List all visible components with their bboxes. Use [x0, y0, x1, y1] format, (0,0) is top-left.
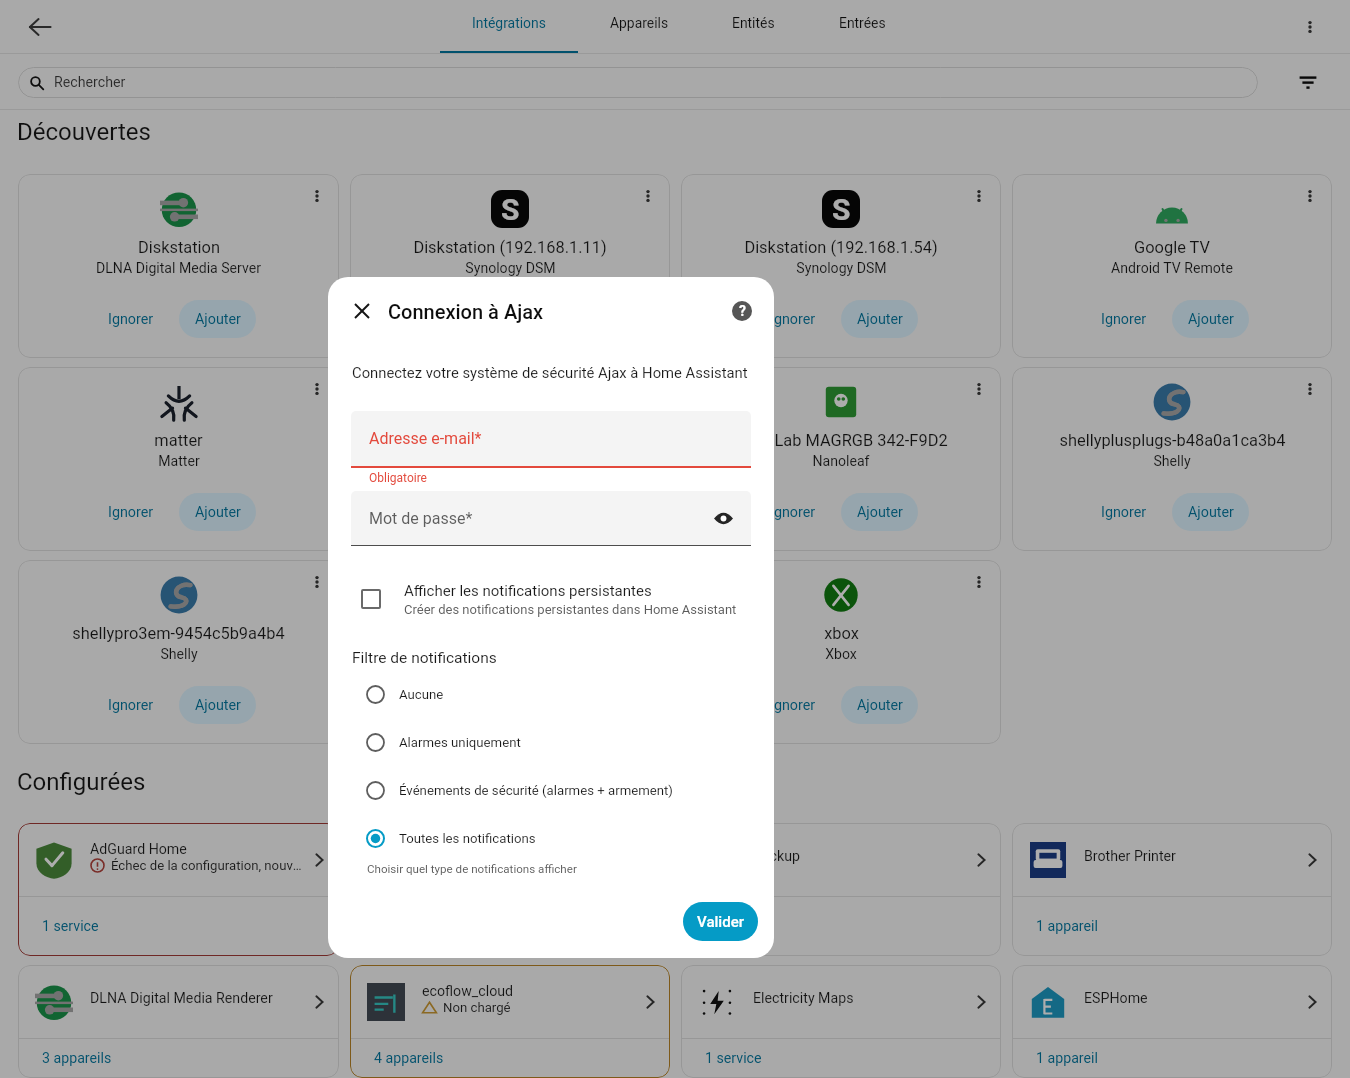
- staticText: Adresse e-mail*: [369, 429, 482, 448]
- button[interactable]: Ignorer: [758, 686, 828, 724]
- button[interactable]: Options: [305, 377, 329, 401]
- button[interactable]: Afficher les notifications persistantes: [352, 575, 752, 623]
- button[interactable]: Options: [305, 184, 329, 208]
- button[interactable]: Options: [636, 377, 660, 401]
- staticText: Mot de passe*: [369, 509, 473, 528]
- staticText: 1 service: [705, 918, 762, 935]
- button[interactable]: Close: [346, 295, 378, 327]
- button[interactable]: Filter: [1286, 60, 1330, 104]
- button[interactable]: ecoflow_cloud: [350, 965, 670, 1078]
- button[interactable]: S: [350, 174, 670, 358]
- button[interactable]: DLNA Digital Media Renderer: [18, 965, 339, 1078]
- staticText: Synology DSM: [465, 260, 556, 277]
- button[interactable]: Backup: [350, 823, 670, 956]
- button[interactable]: Ajouter: [1172, 300, 1249, 338]
- button[interactable]: Ignorer: [427, 493, 497, 531]
- staticText: shellyplusplugs-b48a0a1ca3b4: [1059, 431, 1286, 450]
- button[interactable]: More options: [1284, 1, 1336, 53]
- button[interactable]: AdGuard Home: [18, 823, 339, 956]
- staticText: Aucune: [399, 687, 444, 702]
- staticText: Obligatoire: [369, 471, 427, 485]
- button[interactable]: NanoLab MAGRGB 342-F9D2: [350, 367, 670, 551]
- button[interactable]: Options: [1298, 377, 1322, 401]
- button[interactable]: Adresse e-mail*: [351, 411, 751, 466]
- button[interactable]: Entités: [700, 0, 806, 54]
- staticText: Ignorer: [770, 311, 816, 328]
- staticText: Shelly: [1153, 453, 1191, 470]
- button[interactable]: Ignorer: [758, 300, 828, 338]
- button[interactable]: Ajouter: [510, 300, 587, 338]
- button[interactable]: Brother Printer: [1012, 823, 1332, 956]
- button[interactable]: Appareils: [578, 0, 700, 54]
- button[interactable]: Rechercher: [18, 67, 1258, 98]
- button[interactable]: Mot de passe*: [351, 491, 751, 545]
- staticText: AdGuard Home: [90, 841, 187, 858]
- staticText: Toutes les notifications: [399, 831, 536, 846]
- staticText: 1 appareil: [1036, 918, 1098, 935]
- button[interactable]: Ignorer: [96, 686, 166, 724]
- staticText: Afficher les notifications persistantes: [404, 582, 652, 600]
- button[interactable]: Ignorer: [96, 493, 166, 531]
- button[interactable]: NanoLab MAGRGB 342-F9D2: [681, 367, 1001, 551]
- button[interactable]: Ajouter: [841, 493, 918, 531]
- button[interactable]: Intégrations: [440, 0, 578, 54]
- button[interactable]: Toutes les notifications: [352, 814, 752, 862]
- staticText: Intégrations: [472, 15, 546, 31]
- button[interactable]: Back: [14, 1, 66, 53]
- button[interactable]: Ajouter: [179, 686, 256, 724]
- button[interactable]: Options: [1298, 184, 1322, 208]
- staticText: shellypro3em-9454c5b9a4b4: [72, 624, 285, 643]
- button[interactable]: Help: [727, 296, 757, 326]
- button[interactable]: Ajouter: [841, 300, 918, 338]
- staticText: S: [501, 192, 520, 227]
- button[interactable]: Ignorer: [1089, 493, 1159, 531]
- button[interactable]: matter: [18, 367, 339, 551]
- button[interactable]: Diskstation: [18, 174, 339, 358]
- button[interactable]: S: [681, 174, 1001, 358]
- staticText: 3 appareils: [42, 1050, 112, 1067]
- staticText: Échec de la configuration, nouvel e…: [111, 858, 302, 873]
- button[interactable]: Entrées: [806, 0, 918, 54]
- button[interactable]: xbox: [681, 560, 1001, 744]
- staticText: Entités: [732, 15, 775, 31]
- button[interactable]: ESPHome: [1012, 965, 1332, 1078]
- button[interactable]: Options: [636, 570, 660, 594]
- staticText: Xbox: [825, 646, 857, 663]
- button[interactable]: xbox: [350, 560, 670, 744]
- staticText: Ignorer: [108, 504, 154, 521]
- button[interactable]: shellyplusplugs-b48a0a1ca3b4: [1012, 367, 1332, 551]
- button[interactable]: Ignorer: [96, 300, 166, 338]
- button[interactable]: Ajouter: [841, 686, 918, 724]
- button[interactable]: Ajouter: [179, 493, 256, 531]
- staticText: NanoLab MAGRGB 342-F9D2: [404, 431, 617, 450]
- button[interactable]: shellypro3em-9454c5b9a4b4: [18, 560, 339, 744]
- staticText: Entrées: [839, 15, 886, 31]
- button[interactable]: Electricity Maps: [681, 965, 1001, 1078]
- button[interactable]: Ignorer: [1089, 300, 1159, 338]
- staticText: Brother Printer: [1084, 848, 1176, 865]
- button[interactable]: Ajouter: [179, 300, 256, 338]
- button[interactable]: Options: [967, 184, 991, 208]
- button[interactable]: Aucune: [352, 670, 752, 718]
- staticText: Non chargé: [443, 1000, 511, 1015]
- button[interactable]: Ignorer: [427, 686, 497, 724]
- button[interactable]: Ajouter: [1172, 493, 1249, 531]
- button[interactable]: Valider: [683, 902, 758, 941]
- staticText: Google TV: [1134, 238, 1210, 257]
- button[interactable]: Événements de sécurité (alarmes + armeme…: [352, 766, 752, 814]
- button[interactable]: Backup: [681, 823, 1001, 956]
- button[interactable]: Ignorer: [427, 300, 497, 338]
- button[interactable]: Options: [967, 570, 991, 594]
- button[interactable]: Options: [967, 377, 991, 401]
- button[interactable]: Options: [636, 184, 660, 208]
- button[interactable]: Show password: [709, 504, 737, 532]
- button[interactable]: Ignorer: [758, 493, 828, 531]
- button[interactable]: Google TV: [1012, 174, 1332, 358]
- button[interactable]: Alarmes uniquement: [352, 718, 752, 766]
- button[interactable]: Options: [305, 570, 329, 594]
- staticText: Alarmes uniquement: [399, 735, 521, 750]
- staticText: ?: [739, 303, 746, 319]
- staticText: Configurées: [17, 768, 146, 796]
